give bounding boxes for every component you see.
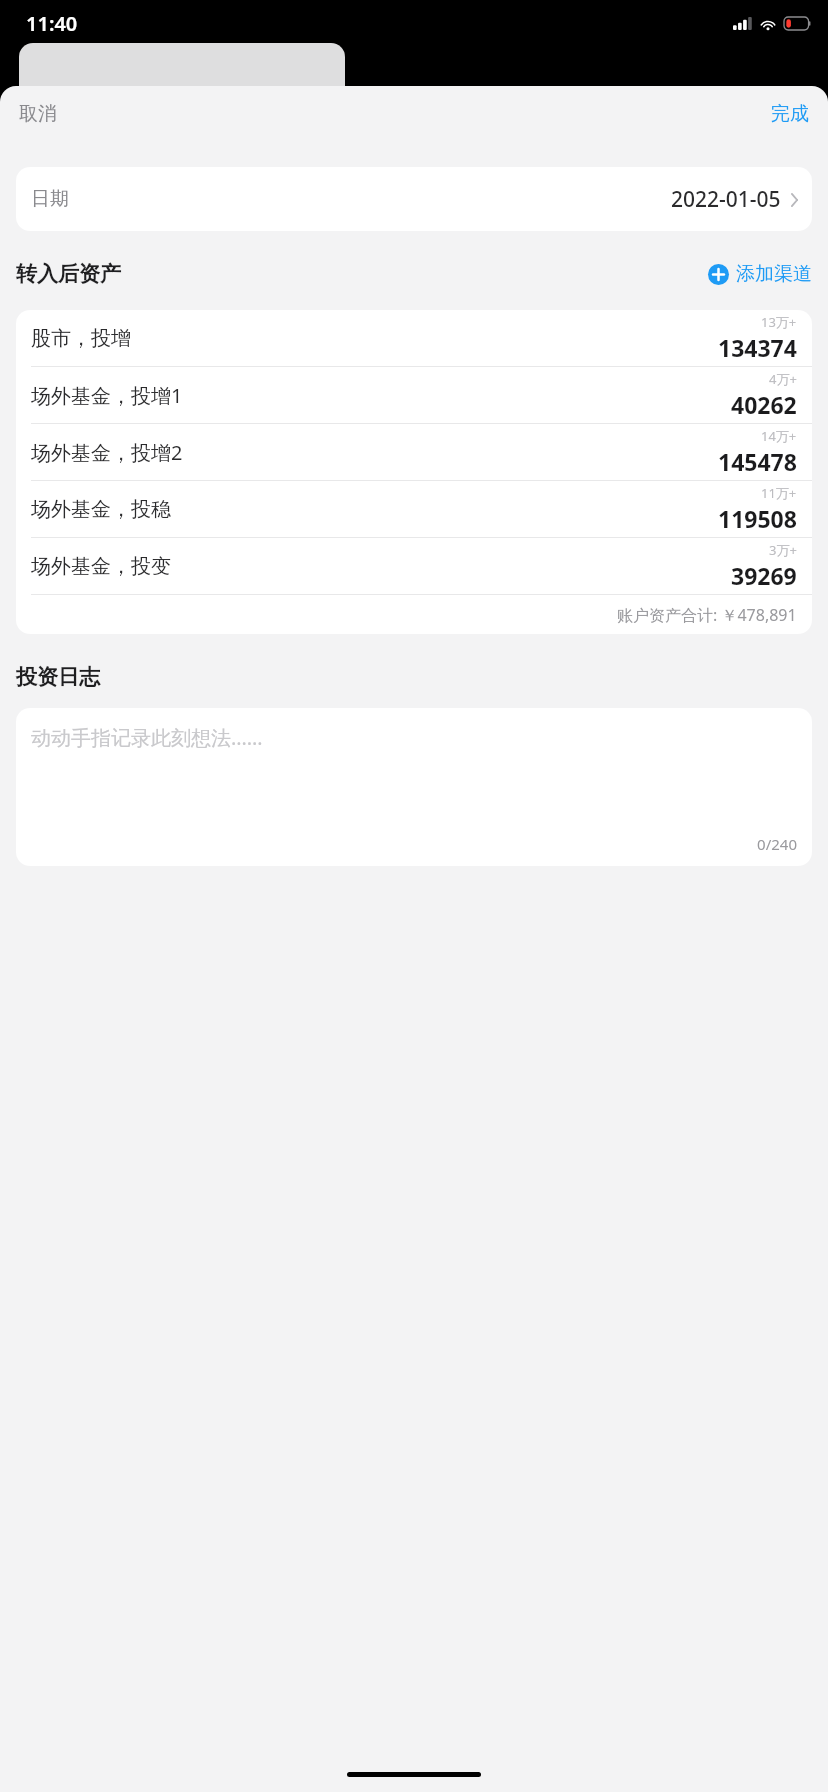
staticText: 场外基金，投变 bbox=[31, 554, 171, 579]
button[interactable]: 取消 bbox=[0, 94, 76, 134]
staticText: 动动手指记录此刻想法…… bbox=[31, 724, 263, 751]
staticText: 投资日志 bbox=[16, 664, 100, 690]
staticText: 添加渠道 bbox=[736, 262, 812, 286]
staticText: 40262 bbox=[731, 389, 797, 420]
staticText: 账户资产合计: ￥478,891 bbox=[617, 604, 797, 626]
button[interactable]: 完成 bbox=[752, 94, 828, 134]
staticText: 转入后资产 bbox=[16, 261, 121, 287]
staticText: 0/240 bbox=[757, 834, 797, 854]
staticText: 39269 bbox=[731, 560, 797, 591]
staticText: 完成 bbox=[771, 102, 809, 126]
staticText: 119508 bbox=[718, 503, 797, 534]
staticText: 13万+ bbox=[761, 313, 797, 331]
staticText: 场外基金，投增2 bbox=[31, 439, 183, 466]
staticText: 日期 bbox=[31, 187, 69, 211]
staticText: 134374 bbox=[718, 332, 797, 363]
staticText: 11万+ bbox=[761, 484, 797, 502]
staticText: 145478 bbox=[718, 446, 797, 477]
staticText: 股市，投增 bbox=[31, 326, 131, 351]
staticText: 场外基金，投增1 bbox=[31, 382, 183, 409]
button[interactable]: 股市，投增 bbox=[16, 310, 812, 366]
staticText: 场外基金，投稳 bbox=[31, 497, 171, 522]
staticText: 14万+ bbox=[761, 427, 797, 445]
button[interactable]: 日期 bbox=[16, 167, 812, 231]
staticText: 11:40 bbox=[26, 10, 78, 37]
staticText: 4万+ bbox=[769, 370, 797, 388]
staticText: 取消 bbox=[19, 102, 57, 126]
staticText: 2022-01-05 bbox=[671, 185, 781, 214]
button[interactable]: 添加渠道 bbox=[700, 258, 812, 290]
staticText: 3万+ bbox=[769, 541, 797, 559]
button[interactable]: 场外基金，投增2 bbox=[16, 424, 812, 480]
button[interactable]: 场外基金，投稳 bbox=[16, 481, 812, 537]
button[interactable]: 场外基金，投变 bbox=[16, 538, 812, 594]
button[interactable]: 场外基金，投增1 bbox=[16, 367, 812, 423]
button[interactable]: 动动手指记录此刻想法…… bbox=[16, 708, 812, 866]
